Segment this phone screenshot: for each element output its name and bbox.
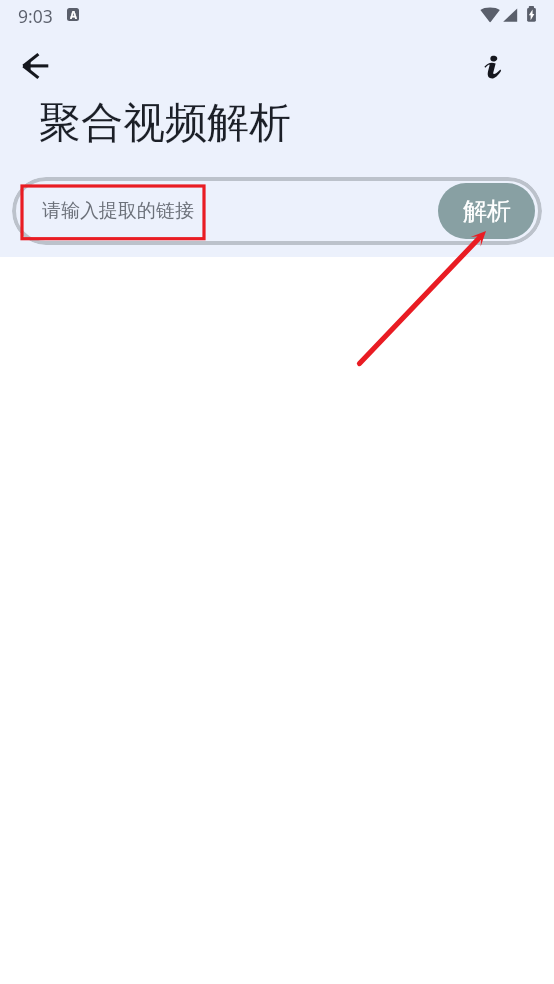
staticText: 解析: [463, 196, 511, 226]
staticText: 请输入提取的链接: [42, 199, 194, 223]
button[interactable]: Back: [12, 42, 60, 90]
staticText: 聚合视频解析: [39, 97, 291, 150]
button[interactable]: Info: [468, 42, 516, 90]
staticText: A: [70, 8, 77, 21]
button[interactable]: 请输入提取的链接: [12, 177, 542, 245]
staticText: 9:03: [18, 4, 53, 28]
button[interactable]: 解析: [438, 183, 535, 239]
